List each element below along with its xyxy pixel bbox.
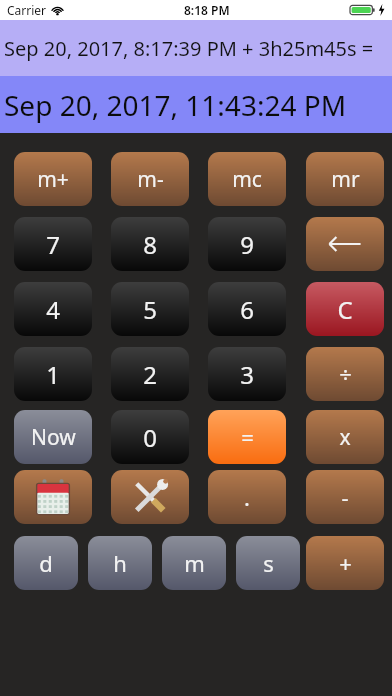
button[interactable]: + [306, 536, 384, 590]
staticText: 5 [143, 293, 157, 326]
button[interactable]: 2 [111, 347, 189, 401]
staticText: 4 [46, 293, 60, 326]
button[interactable]: ÷ [306, 347, 384, 401]
button[interactable]: mc [208, 152, 286, 206]
button[interactable]: 0 [111, 410, 189, 464]
staticText: 3 [240, 358, 254, 391]
button[interactable]: m+ [14, 152, 92, 206]
staticText: 1 [46, 358, 60, 391]
staticText: mc [232, 165, 262, 194]
button[interactable]: x [306, 410, 384, 464]
button[interactable]: Backspace [306, 217, 384, 271]
button[interactable]: 1 [14, 347, 92, 401]
button[interactable]: 5 [111, 282, 189, 336]
staticText: m+ [37, 165, 69, 194]
button[interactable]: 7 [14, 217, 92, 271]
staticText: 7 [46, 228, 60, 261]
button[interactable]: h [88, 536, 152, 590]
staticText: x [339, 423, 351, 452]
staticText: m- [137, 165, 164, 194]
staticText: m [184, 548, 205, 578]
button[interactable]: Date picker [14, 470, 92, 524]
staticText: Sep 20, 2017, 11:43:24 PM [4, 86, 347, 124]
button[interactable]: Now [14, 410, 92, 464]
staticText: h [113, 548, 127, 578]
button[interactable]: m- [111, 152, 189, 206]
button[interactable]: mr [306, 152, 384, 206]
staticText: 9 [240, 228, 254, 261]
staticText: Sep 20, 2017, 8:17:39 PM + 3h25m45s = [4, 35, 374, 62]
button[interactable]: d [14, 536, 78, 590]
staticText: C [337, 293, 353, 326]
staticText: 8 [143, 228, 157, 261]
staticText: mr [331, 165, 360, 194]
staticText: 8:18 PM [184, 2, 230, 18]
staticText: - [341, 482, 349, 512]
staticText: 2 [143, 358, 157, 391]
button[interactable]: Sep 20, 2017, 8:17:39 PM + 3h25m45s = [0, 20, 392, 76]
staticText: Now [31, 423, 76, 452]
button[interactable]: C [306, 282, 384, 336]
button[interactable]: 8 [111, 217, 189, 271]
button[interactable]: 3 [208, 347, 286, 401]
button[interactable]: . [208, 470, 286, 524]
button[interactable]: 9 [208, 217, 286, 271]
button[interactable]: = [208, 410, 286, 464]
staticText: 0 [143, 421, 157, 454]
staticText: d [39, 548, 53, 578]
staticText: 6 [240, 293, 254, 326]
staticText: s [263, 548, 274, 578]
button[interactable]: Settings [111, 470, 189, 524]
button[interactable]: 6 [208, 282, 286, 336]
staticText: ÷ [339, 359, 352, 389]
button[interactable]: 4 [14, 282, 92, 336]
button[interactable]: m [162, 536, 226, 590]
staticText: Carrier [7, 2, 47, 18]
button[interactable]: Sep 20, 2017, 11:43:24 PM [0, 76, 392, 133]
staticText: . [244, 482, 250, 512]
staticText: = [241, 422, 254, 452]
button[interactable]: s [236, 536, 300, 590]
button[interactable]: - [306, 470, 384, 524]
staticText: + [339, 548, 352, 578]
